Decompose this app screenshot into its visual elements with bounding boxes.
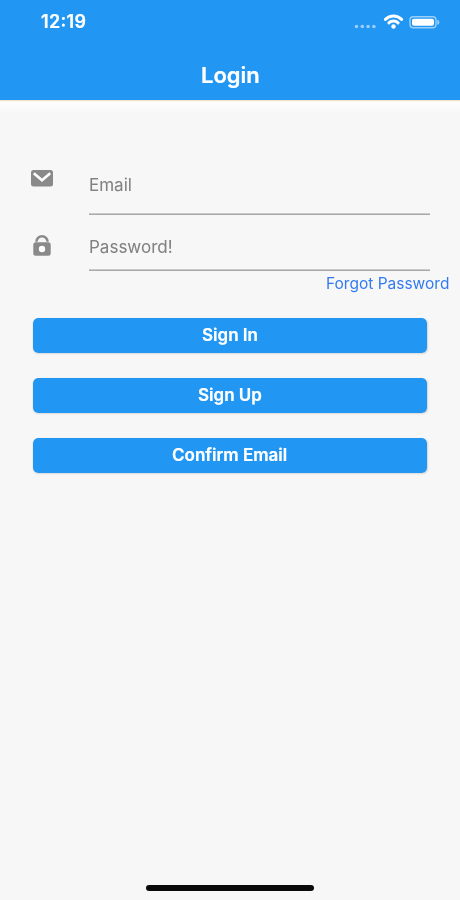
button[interactable]: Confirm Email <box>33 438 427 473</box>
staticText: Forgot Password <box>326 274 450 293</box>
button[interactable]: Sign Up <box>33 378 427 413</box>
staticText: 12:19 <box>41 11 87 33</box>
staticText: Sign Up <box>198 385 262 406</box>
staticText: Confirm Email <box>172 445 288 466</box>
staticText: Login <box>201 62 260 89</box>
button[interactable]: Forgot Password <box>326 274 450 293</box>
staticText: Sign In <box>202 325 258 346</box>
button[interactable]: Sign In <box>33 318 427 353</box>
staticText: Email <box>89 175 132 196</box>
staticText: Password! <box>89 237 173 258</box>
